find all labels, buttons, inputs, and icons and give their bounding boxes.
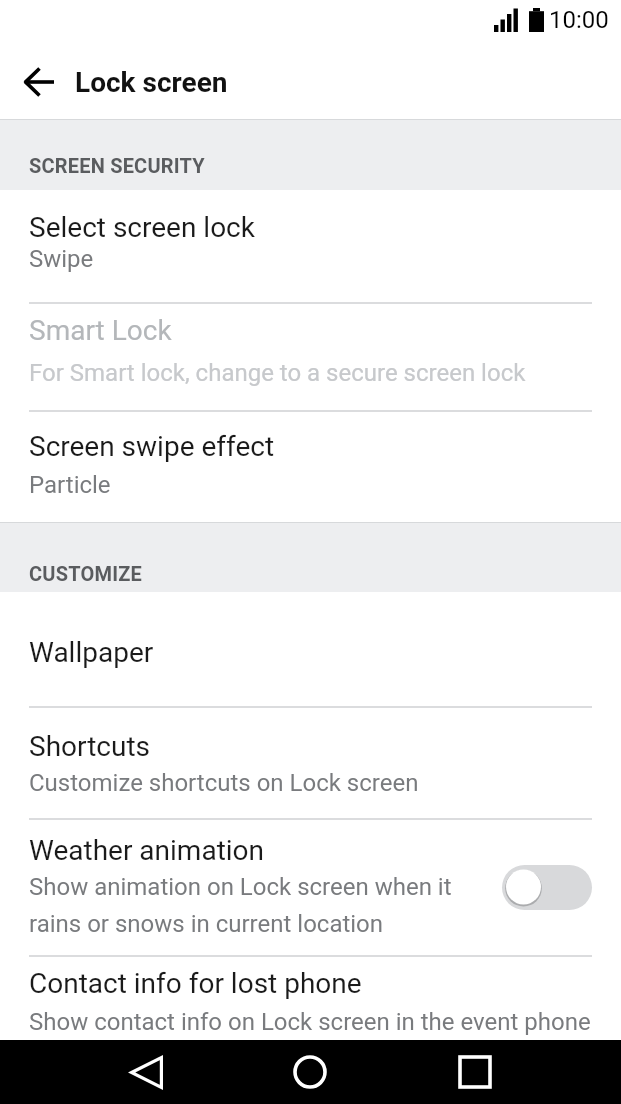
staticText: Show contact info on Lock screen in the … [29, 1008, 591, 1036]
button[interactable]: Select screen lock [0, 190, 621, 302]
staticText: Screen swipe effect [29, 430, 275, 463]
button[interactable]: Weather animation [0, 820, 621, 955]
button[interactable] [114, 1040, 178, 1104]
staticText: Customize shortcuts on Lock screen [29, 769, 419, 797]
staticText: CUSTOMIZE [29, 562, 143, 585]
button[interactable] [443, 1040, 507, 1104]
staticText: Contact info for lost phone [29, 967, 362, 1000]
staticText: SCREEN SECURITY [29, 154, 205, 177]
staticText: Weather animation [29, 834, 265, 867]
staticText: For Smart lock, change to a secure scree… [29, 359, 526, 387]
staticText: Swipe [29, 245, 94, 273]
staticText: 10:00 [549, 6, 609, 34]
staticText: Shortcuts [29, 730, 151, 763]
button[interactable] [502, 865, 592, 910]
staticText: Smart Lock [29, 314, 172, 347]
button[interactable]: Smart Lock [0, 304, 621, 410]
staticText: rains or snows in current location [29, 910, 384, 938]
staticText: Wallpaper [29, 636, 154, 669]
button[interactable]: Shortcuts [0, 708, 621, 818]
staticText: Select screen lock [29, 211, 255, 244]
button[interactable]: Contact info for lost phone [0, 957, 621, 1040]
staticText: Lock screen [75, 66, 228, 99]
button[interactable]: Wallpaper [0, 592, 621, 706]
button[interactable] [8, 50, 72, 114]
button[interactable] [278, 1040, 342, 1104]
staticText: Show animation on Lock screen when it [29, 873, 452, 901]
staticText: Particle [29, 471, 111, 499]
button[interactable]: Screen swipe effect [0, 412, 621, 522]
